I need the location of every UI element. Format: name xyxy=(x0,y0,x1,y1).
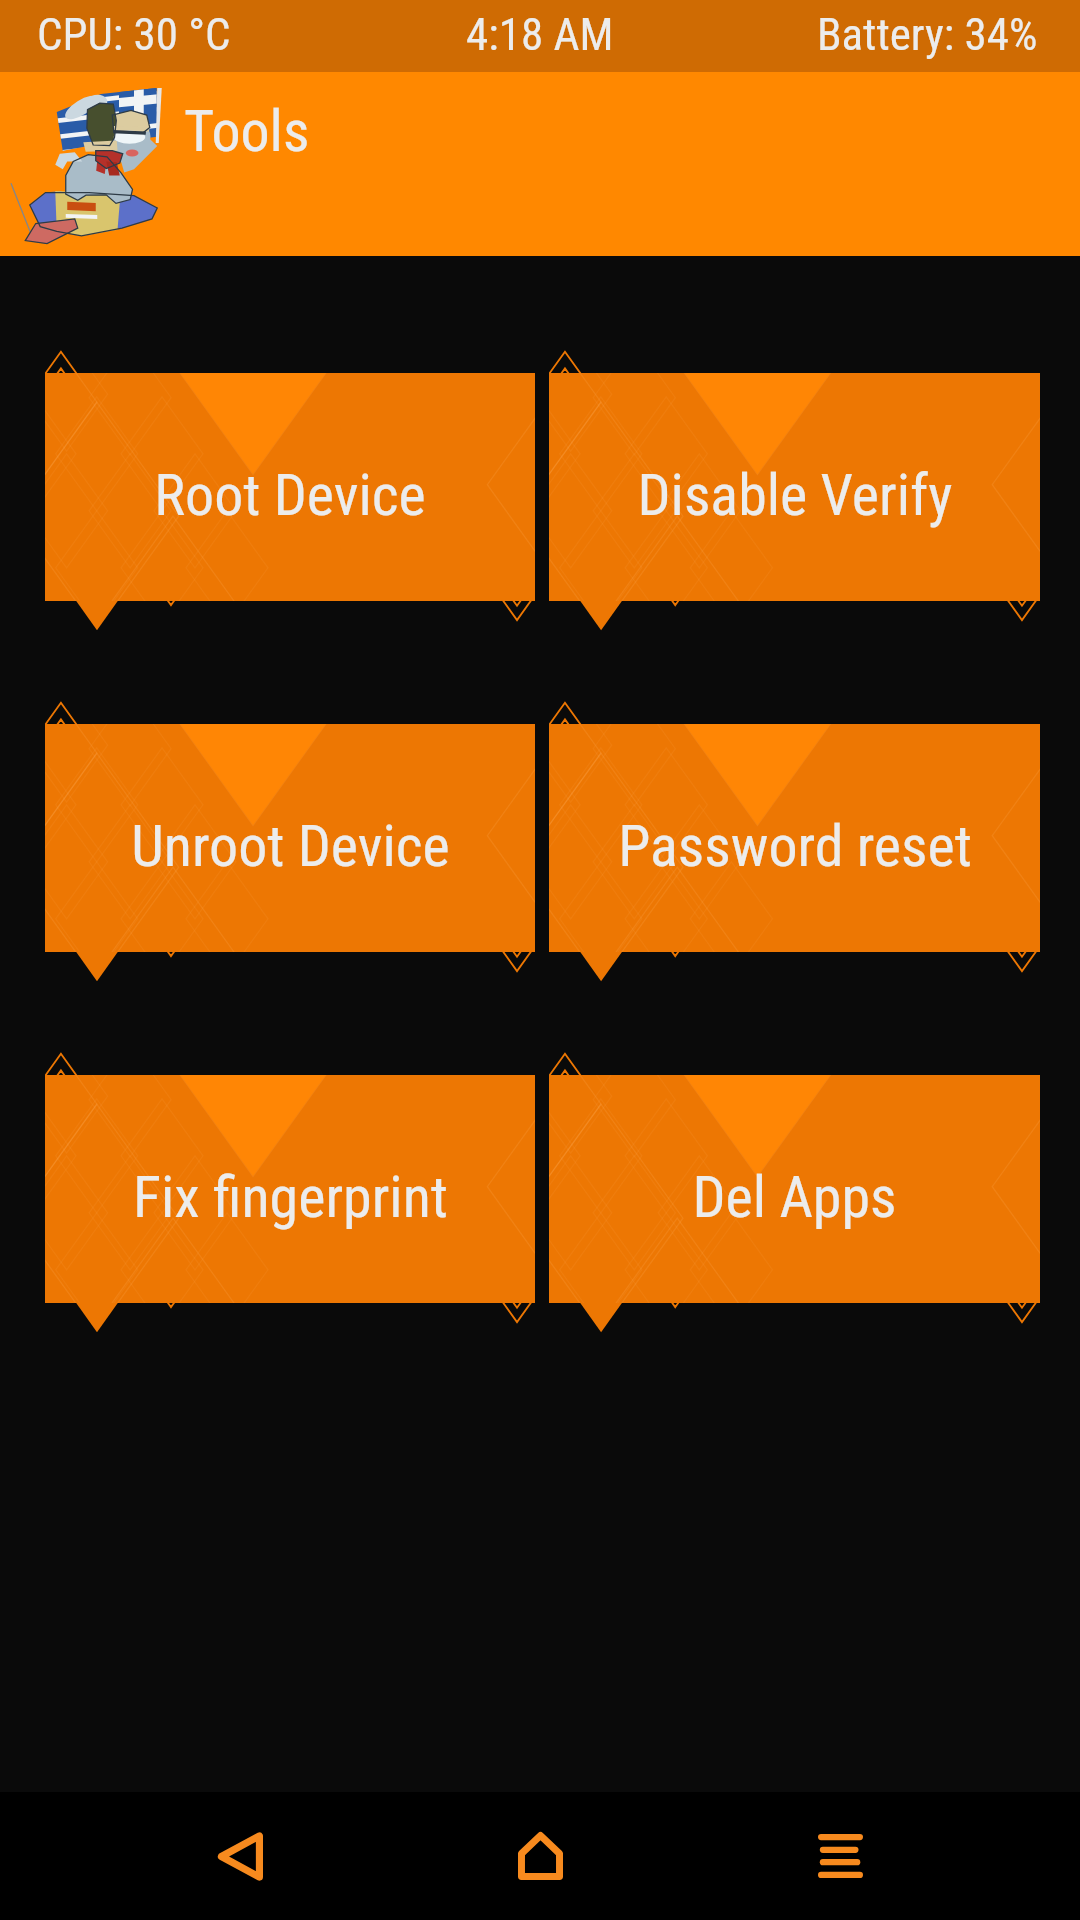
staticText: Del Apps xyxy=(692,1163,897,1231)
staticText: Disable Verify xyxy=(637,461,953,529)
staticText: 4:18 AM xyxy=(466,8,614,61)
button[interactable]: Password reset xyxy=(549,724,1040,952)
button[interactable]: Unroot Device xyxy=(45,724,535,952)
staticText: CPU: 30 °C xyxy=(37,8,231,61)
staticText: Password reset xyxy=(618,812,972,880)
button[interactable]: Home xyxy=(460,1792,620,1920)
button[interactable]: Disable Verify xyxy=(549,373,1040,601)
staticText: Fix fingerprint xyxy=(133,1163,448,1231)
button[interactable]: MIUI Hellas logo xyxy=(14,91,164,246)
button[interactable]: Recent apps xyxy=(760,1792,920,1920)
button[interactable]: Back xyxy=(160,1792,320,1920)
staticText: Battery: 34% xyxy=(817,8,1038,61)
staticText: Root Device xyxy=(154,461,426,529)
staticText: Tools xyxy=(184,97,310,165)
button[interactable]: Fix fingerprint xyxy=(45,1075,535,1303)
button[interactable]: Del Apps xyxy=(549,1075,1040,1303)
button[interactable]: Root Device xyxy=(45,373,535,601)
staticText: Unroot Device xyxy=(131,812,450,880)
